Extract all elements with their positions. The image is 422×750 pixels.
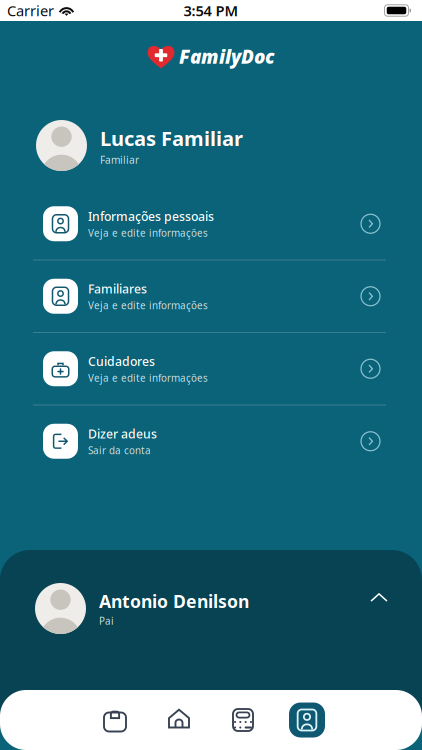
button[interactable]: Familiares: [0, 260, 422, 332]
staticText: Informações pessoais: [88, 208, 214, 225]
staticText: Cuidadores: [88, 353, 155, 370]
button[interactable]: Dizer adeus: [0, 405, 422, 477]
button[interactable]: Cuidadores: [0, 333, 422, 404]
staticText: Dizer adeus: [88, 425, 157, 442]
button[interactable]: Antonio Denilson: [0, 550, 422, 750]
button[interactable]: Perfil: [285, 698, 329, 742]
staticText: Antonio Denilson: [99, 589, 249, 613]
staticText: Veja e edite informações: [88, 299, 208, 312]
staticText: Veja e edite informações: [88, 226, 208, 239]
staticText: Sair da conta: [88, 444, 151, 457]
staticText: Familiares: [88, 280, 147, 297]
button[interactable]: Relatórios: [93, 698, 137, 742]
button[interactable]: Calculadora: [221, 698, 265, 742]
staticText: Familiar: [100, 153, 139, 167]
staticText: Lucas Familiar: [100, 124, 243, 152]
staticText: FamilyDoc: [179, 44, 275, 69]
button[interactable]: Início: [157, 698, 201, 742]
staticText: Carrier: [7, 1, 54, 20]
staticText: Pai: [99, 614, 114, 628]
staticText: 3:54 PM: [183, 1, 238, 20]
button[interactable]: Informações pessoais: [0, 188, 422, 259]
staticText: Veja e edite informações: [88, 371, 208, 384]
